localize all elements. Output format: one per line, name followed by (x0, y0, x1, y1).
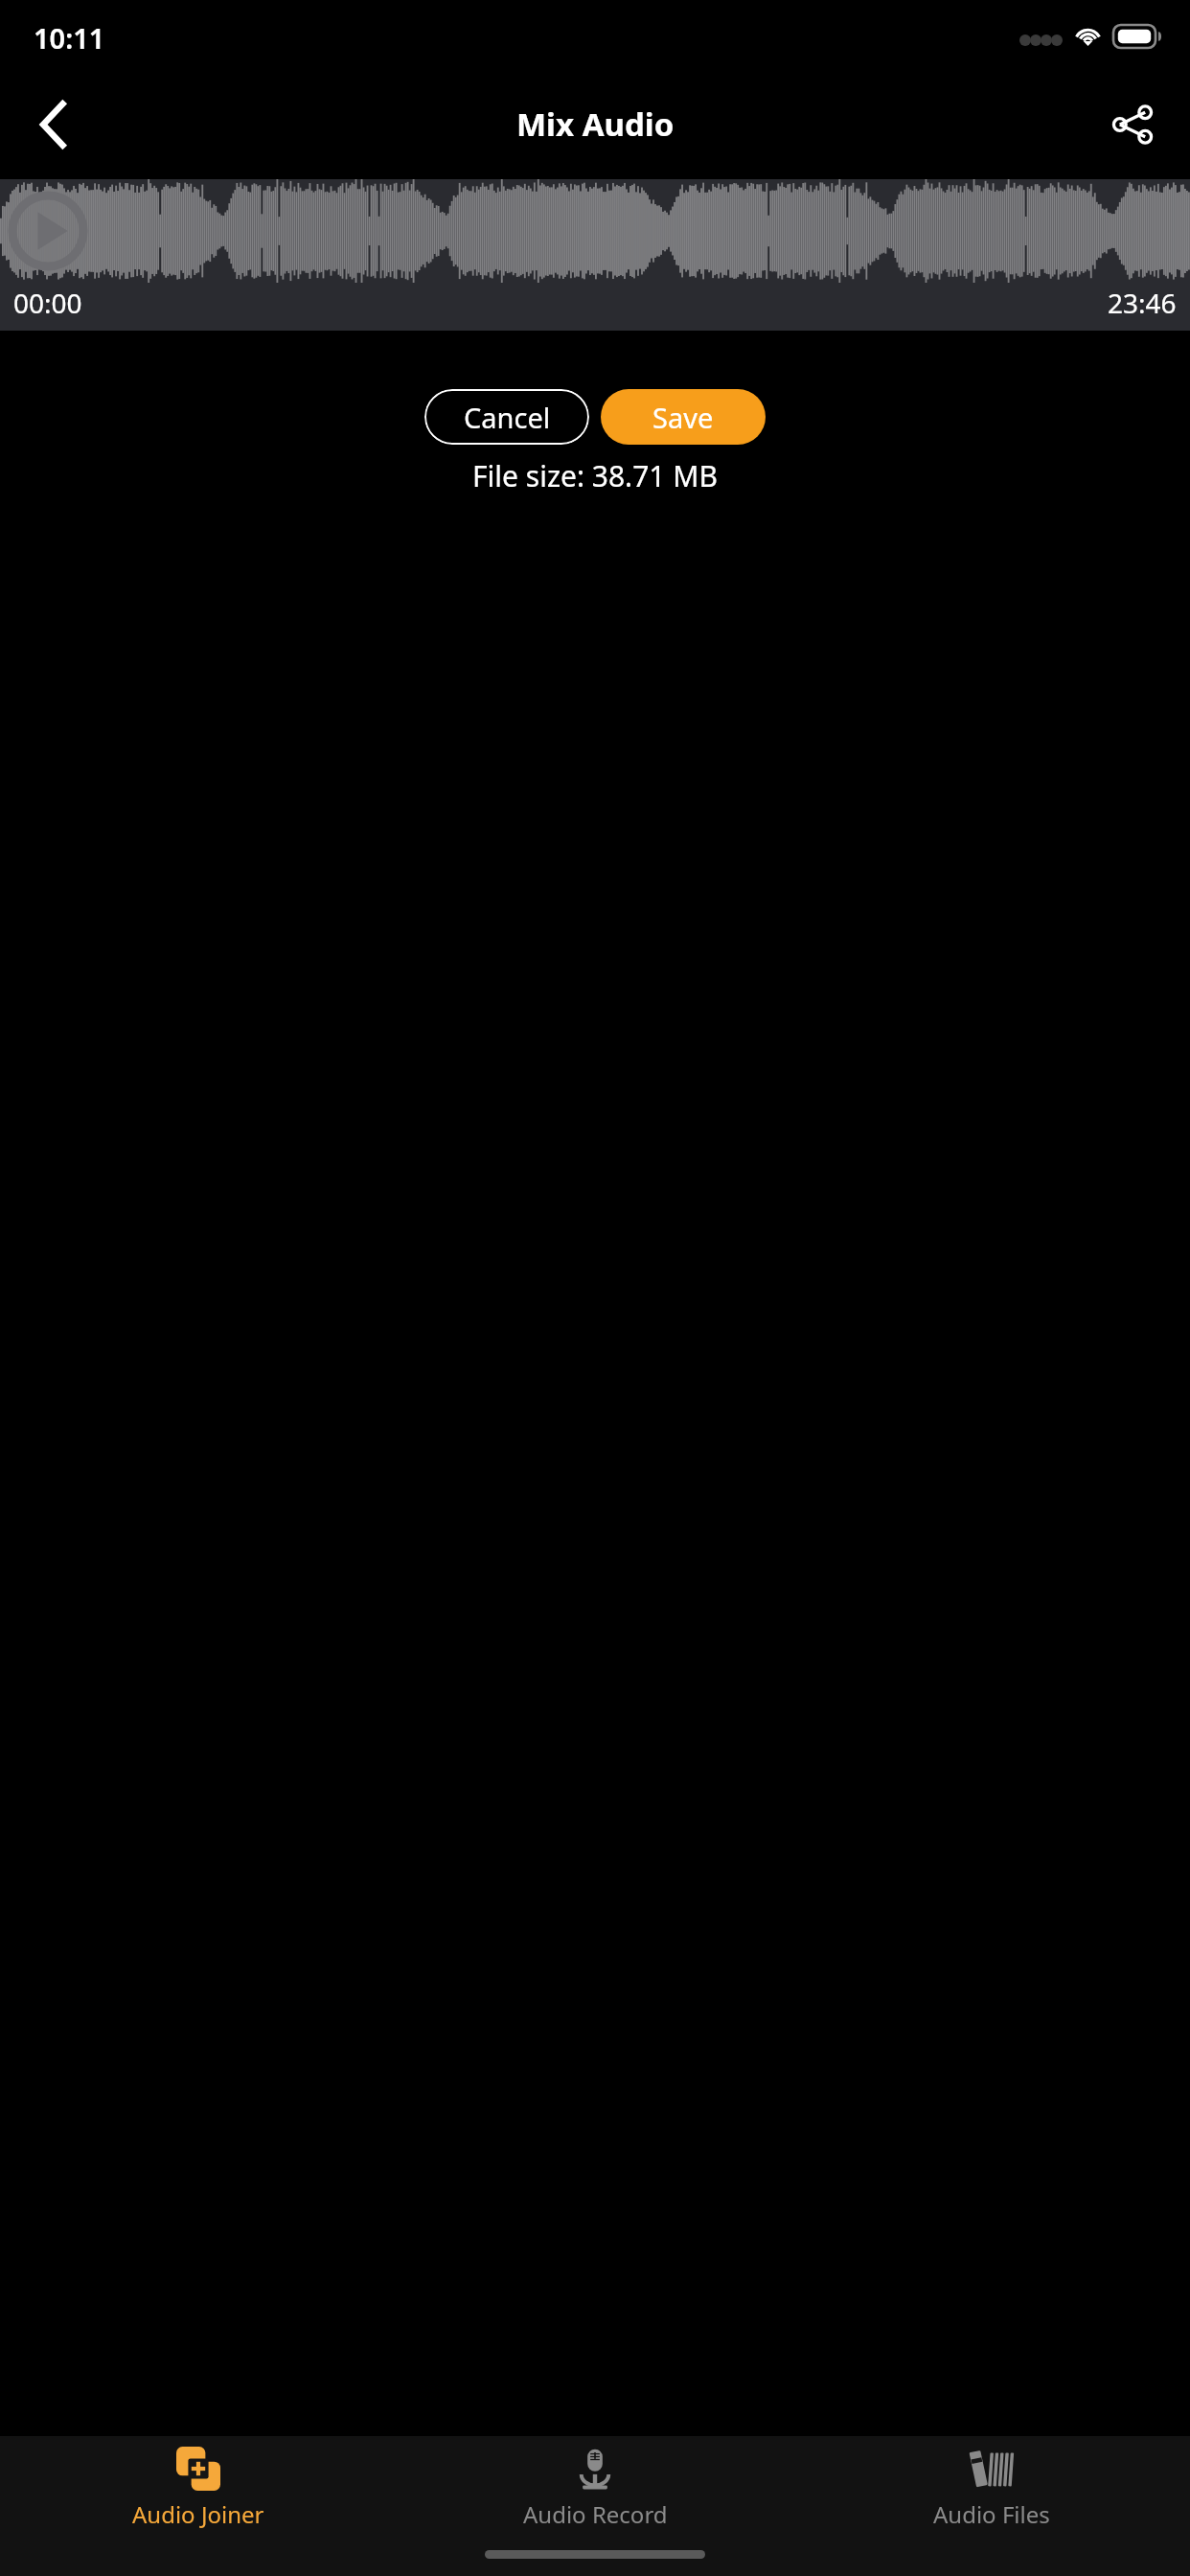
staticText: Audio Record (523, 2498, 668, 2530)
button[interactable]: Audio Files (793, 2436, 1190, 2536)
button[interactable]: Save (601, 389, 766, 445)
button[interactable]: Audio Record (397, 2436, 793, 2536)
staticText: 00:00 (13, 285, 82, 321)
button[interactable]: Back (15, 86, 92, 163)
staticText: Cancel (464, 399, 551, 436)
staticText: Audio Files (933, 2498, 1050, 2530)
button[interactable]: Share (1094, 86, 1171, 163)
staticText: Save (652, 399, 714, 436)
staticText: 10:11 (34, 19, 105, 57)
staticText: 23:46 (1108, 285, 1177, 321)
staticText: File size: 38.71 MB (472, 456, 718, 495)
button[interactable]: Cancel (424, 389, 589, 445)
staticText: Audio Joiner (132, 2498, 264, 2530)
button[interactable]: Play (8, 191, 88, 271)
staticText: Mix Audio (516, 103, 675, 146)
button[interactable]: Audio Joiner (0, 2436, 397, 2536)
